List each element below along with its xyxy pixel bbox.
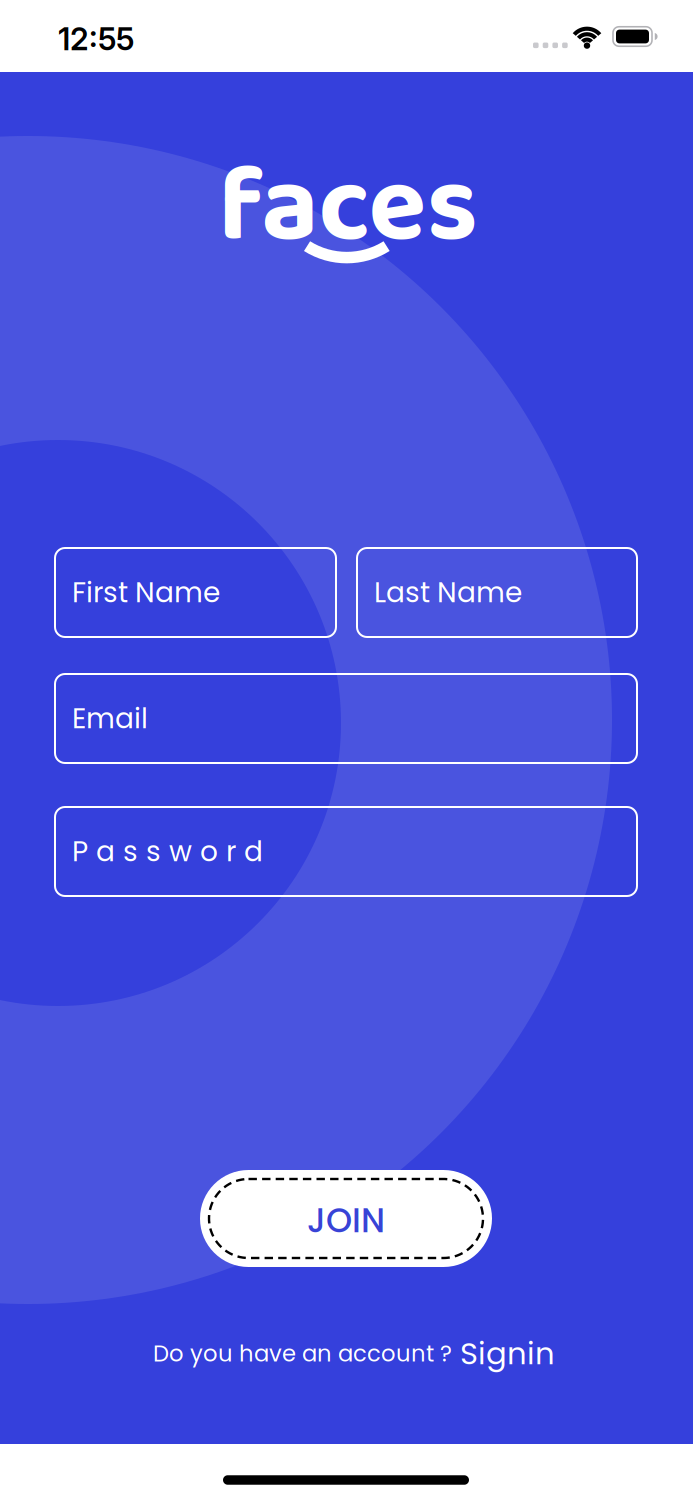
staticText: Do you have an account ? <box>153 1338 452 1369</box>
staticText: JOIN <box>307 1197 385 1244</box>
staticText: faces <box>218 123 477 293</box>
button[interactable]: Signin <box>460 1333 555 1374</box>
staticText: Email <box>72 699 148 738</box>
staticText: Signin <box>460 1333 555 1374</box>
button[interactable]: Email <box>55 674 637 763</box>
button[interactable]: First Name <box>55 548 336 637</box>
staticText: 12:55 <box>58 20 134 57</box>
button[interactable]: P a s s w o r d <box>55 807 637 896</box>
button[interactable]: Last Name <box>357 548 637 637</box>
staticText: P a s s w o r d <box>72 832 263 871</box>
button[interactable]: JOIN <box>200 1170 492 1267</box>
staticText: Last Name <box>374 573 522 612</box>
staticText: First Name <box>72 573 220 612</box>
